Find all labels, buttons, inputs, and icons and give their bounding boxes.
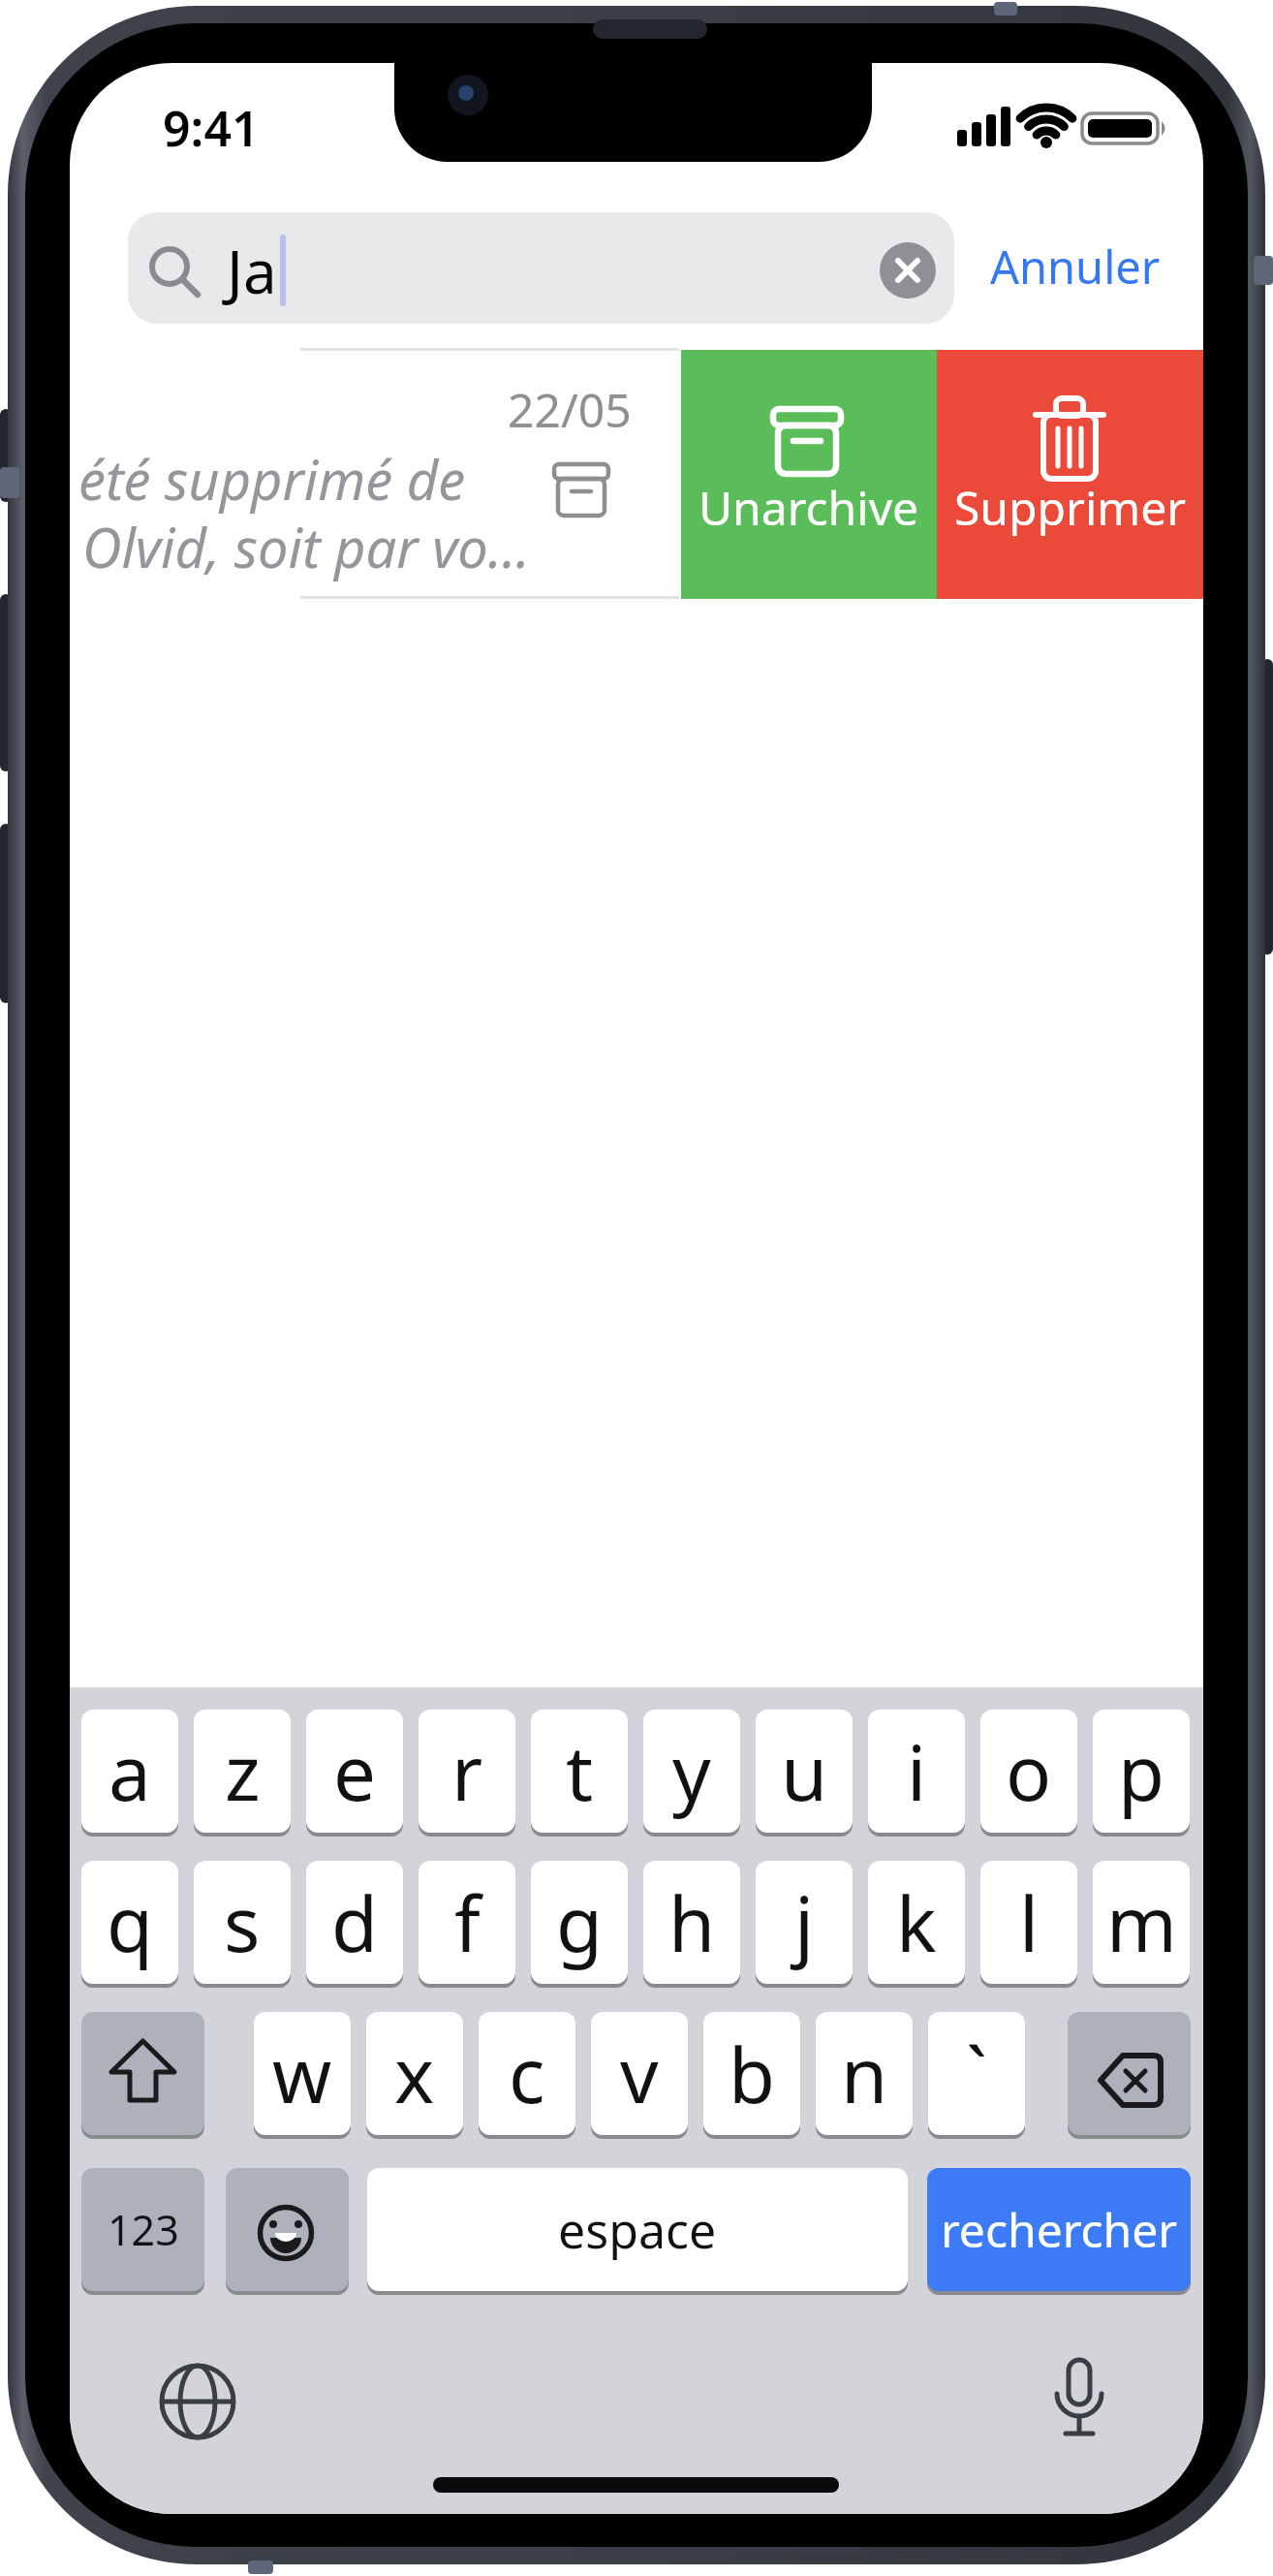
staticText: s [224, 1871, 261, 1974]
staticText: Supprimer [954, 476, 1187, 539]
staticText: Annuler [990, 236, 1161, 298]
staticText: o [1006, 1720, 1052, 1823]
staticText: n [841, 2023, 888, 2125]
staticText: l [1019, 1871, 1040, 1974]
staticText: h [668, 1871, 716, 1974]
staticText: 9:41 [163, 95, 260, 161]
staticText: m [1106, 1871, 1177, 1974]
staticText: c [509, 2023, 545, 2125]
staticText: i [907, 1720, 927, 1823]
staticText: w [272, 2023, 332, 2125]
staticText: Olvid, soit par vo... [82, 510, 530, 583]
staticText: été supprimé de [78, 442, 466, 516]
staticText: Unarchive [699, 476, 919, 539]
staticText: 22/05 [508, 378, 632, 441]
staticText: e [333, 1720, 376, 1823]
staticText: y [672, 1720, 711, 1823]
staticText: espace [558, 2197, 717, 2263]
staticText: d [331, 1871, 378, 1974]
staticText: z [225, 1720, 261, 1823]
staticText: r [451, 1720, 483, 1823]
staticText: ` [966, 2023, 987, 2125]
staticText: a [109, 1720, 151, 1823]
staticText: p [1118, 1720, 1164, 1823]
staticText: 123 [108, 2201, 179, 2258]
staticText: Ja [227, 230, 277, 311]
staticText: u [781, 1720, 828, 1823]
staticText: x [394, 2023, 435, 2125]
staticText: v [620, 2023, 659, 2125]
staticText: t [566, 1720, 594, 1823]
staticText: j [794, 1871, 815, 1974]
staticText: k [896, 1871, 937, 1974]
staticText: q [107, 1871, 153, 1974]
staticText: rechercher [941, 2198, 1178, 2261]
staticText: g [556, 1871, 603, 1974]
staticText: f [454, 1871, 481, 1974]
staticText: b [729, 2023, 775, 2125]
